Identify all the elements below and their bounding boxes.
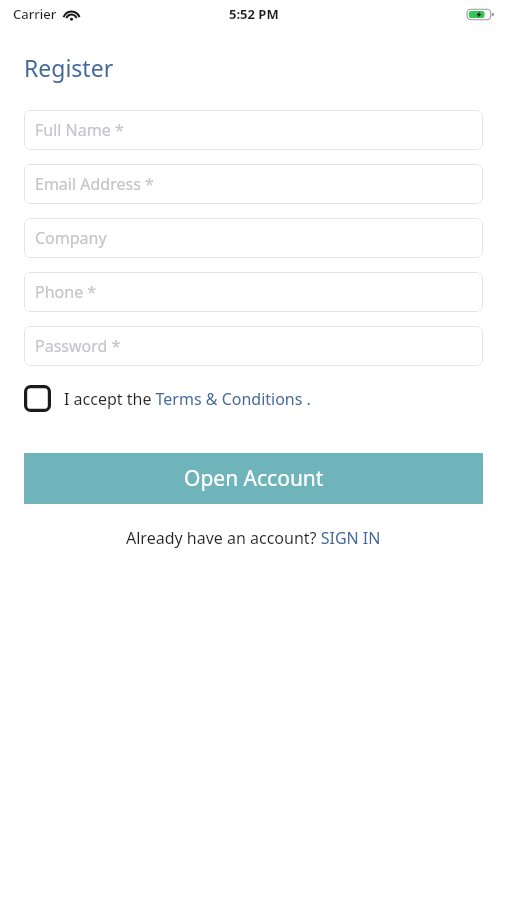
other: Battery charging [467,8,494,21]
button[interactable]: Already have an account? SIGN IN [126,527,381,549]
button[interactable]: Email Address * [24,164,483,204]
staticText: I accept the Terms & Conditions . [64,388,311,410]
staticText: Carrier [13,5,57,23]
staticText: 5:52 PM [229,5,279,23]
button[interactable]: Password * [24,326,483,366]
other: Wi-Fi [63,8,80,21]
button[interactable]: Phone * [24,272,483,312]
staticText: Already have an account? SIGN IN [126,527,381,549]
button[interactable]: Accept terms and conditions [24,385,483,412]
staticText: Open Account [184,464,324,493]
staticText: Company [35,227,107,249]
staticText: Phone * [35,281,97,303]
staticText: Password * [35,335,121,357]
button[interactable]: Accept terms and conditions [24,385,51,412]
staticText: Email Address * [35,173,154,195]
button[interactable]: Full Name * [24,110,483,150]
staticText: Full Name * [35,119,124,141]
button[interactable]: Open Account [24,453,483,504]
staticText: Register [24,52,114,83]
button[interactable]: Company [24,218,483,258]
